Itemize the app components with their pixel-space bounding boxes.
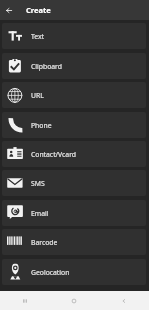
staticText: Clipboard — [31, 62, 62, 71]
button[interactable]: Geolocation — [2, 259, 146, 285]
button[interactable]: Email — [2, 200, 146, 226]
button[interactable]: Contact/Vcard — [2, 141, 146, 167]
button[interactable]: Text — [2, 23, 146, 49]
staticText: Barcode — [31, 238, 58, 247]
button[interactable]: Clipboard — [2, 53, 146, 79]
staticText: Geolocation — [31, 268, 70, 277]
staticText: SMS — [31, 179, 45, 188]
staticText: Email — [31, 209, 49, 218]
button[interactable]: Phone — [2, 112, 146, 138]
button[interactable]: Recent apps — [0, 291, 49, 310]
staticText: Contact/Vcard — [31, 150, 76, 159]
button[interactable]: URL — [2, 82, 146, 108]
button[interactable]: Barcode — [2, 229, 146, 255]
staticText: Phone — [31, 121, 52, 130]
staticText: Text — [31, 32, 45, 41]
staticText: URL — [31, 91, 44, 100]
button[interactable]: Home — [49, 291, 99, 310]
button[interactable]: Back — [0, 0, 17, 20]
staticText: Create — [26, 5, 51, 15]
button[interactable]: SMS — [2, 170, 146, 196]
